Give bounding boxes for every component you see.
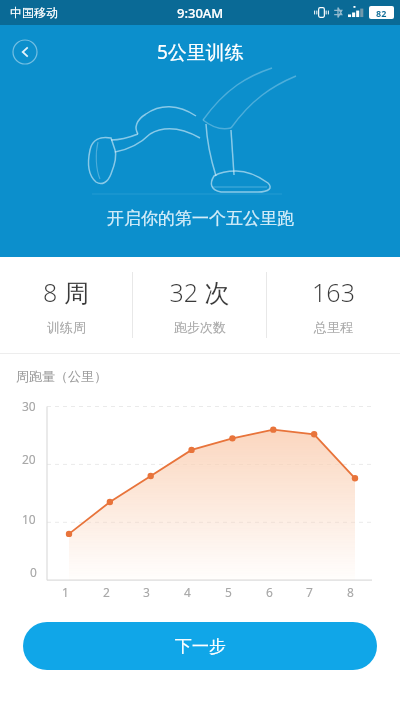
staticText: 中国移动 (10, 5, 58, 20)
staticText: 10 (22, 511, 36, 527)
button[interactable]: Back (9, 36, 41, 68)
staticText: 1 (62, 584, 69, 600)
button[interactable]: 32 次 (133, 257, 266, 353)
staticText: 下一步 (175, 636, 226, 657)
staticText: 32 次 (169, 275, 230, 309)
staticText: 周跑量（公里） (16, 368, 107, 384)
staticText: 5公里训练 (157, 39, 244, 65)
staticText: 开启你的第一个五公里跑 (107, 208, 294, 229)
staticText: 82 (376, 7, 387, 19)
staticText: 总里程 (314, 319, 353, 335)
staticText: 20 (22, 451, 36, 467)
staticText: 2 (103, 584, 110, 600)
button[interactable]: 下一步 (23, 622, 377, 670)
staticText: 4 (184, 584, 191, 600)
staticText: 跑步次数 (174, 319, 226, 335)
staticText: 7 (306, 584, 313, 600)
staticText: 5 (225, 584, 232, 600)
staticText: 6 (266, 584, 273, 600)
staticText: 0 (30, 564, 37, 580)
staticText: 8 (347, 584, 354, 600)
staticText: 9:30AM (177, 4, 224, 22)
staticText: 163 (312, 275, 355, 309)
button[interactable]: 163 (267, 257, 400, 353)
staticText: 8 周 (43, 275, 89, 309)
button[interactable]: 8 周 (0, 257, 132, 353)
staticText: 3 (143, 584, 150, 600)
staticText: 训练周 (47, 319, 86, 335)
staticText: 30 (22, 398, 36, 414)
